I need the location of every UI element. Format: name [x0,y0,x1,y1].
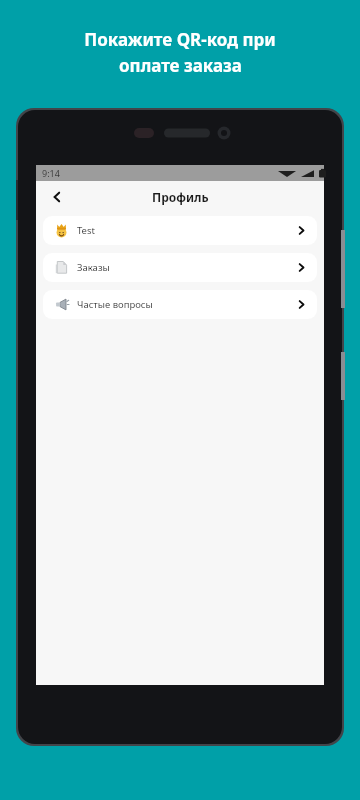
button[interactable]: Частые вопросы [43,290,317,319]
staticText: оплате заказа [119,54,242,77]
button[interactable]: Back [46,186,68,208]
staticText: Покажите QR-код при [84,28,276,51]
staticText: Заказы [77,261,110,274]
staticText: Профиль [152,189,209,205]
staticText: 9:14 [42,167,60,179]
staticText: Частые вопросы [77,298,153,311]
button[interactable]: Test [43,216,317,245]
button[interactable]: Заказы [43,253,317,282]
staticText: Test [77,224,95,237]
